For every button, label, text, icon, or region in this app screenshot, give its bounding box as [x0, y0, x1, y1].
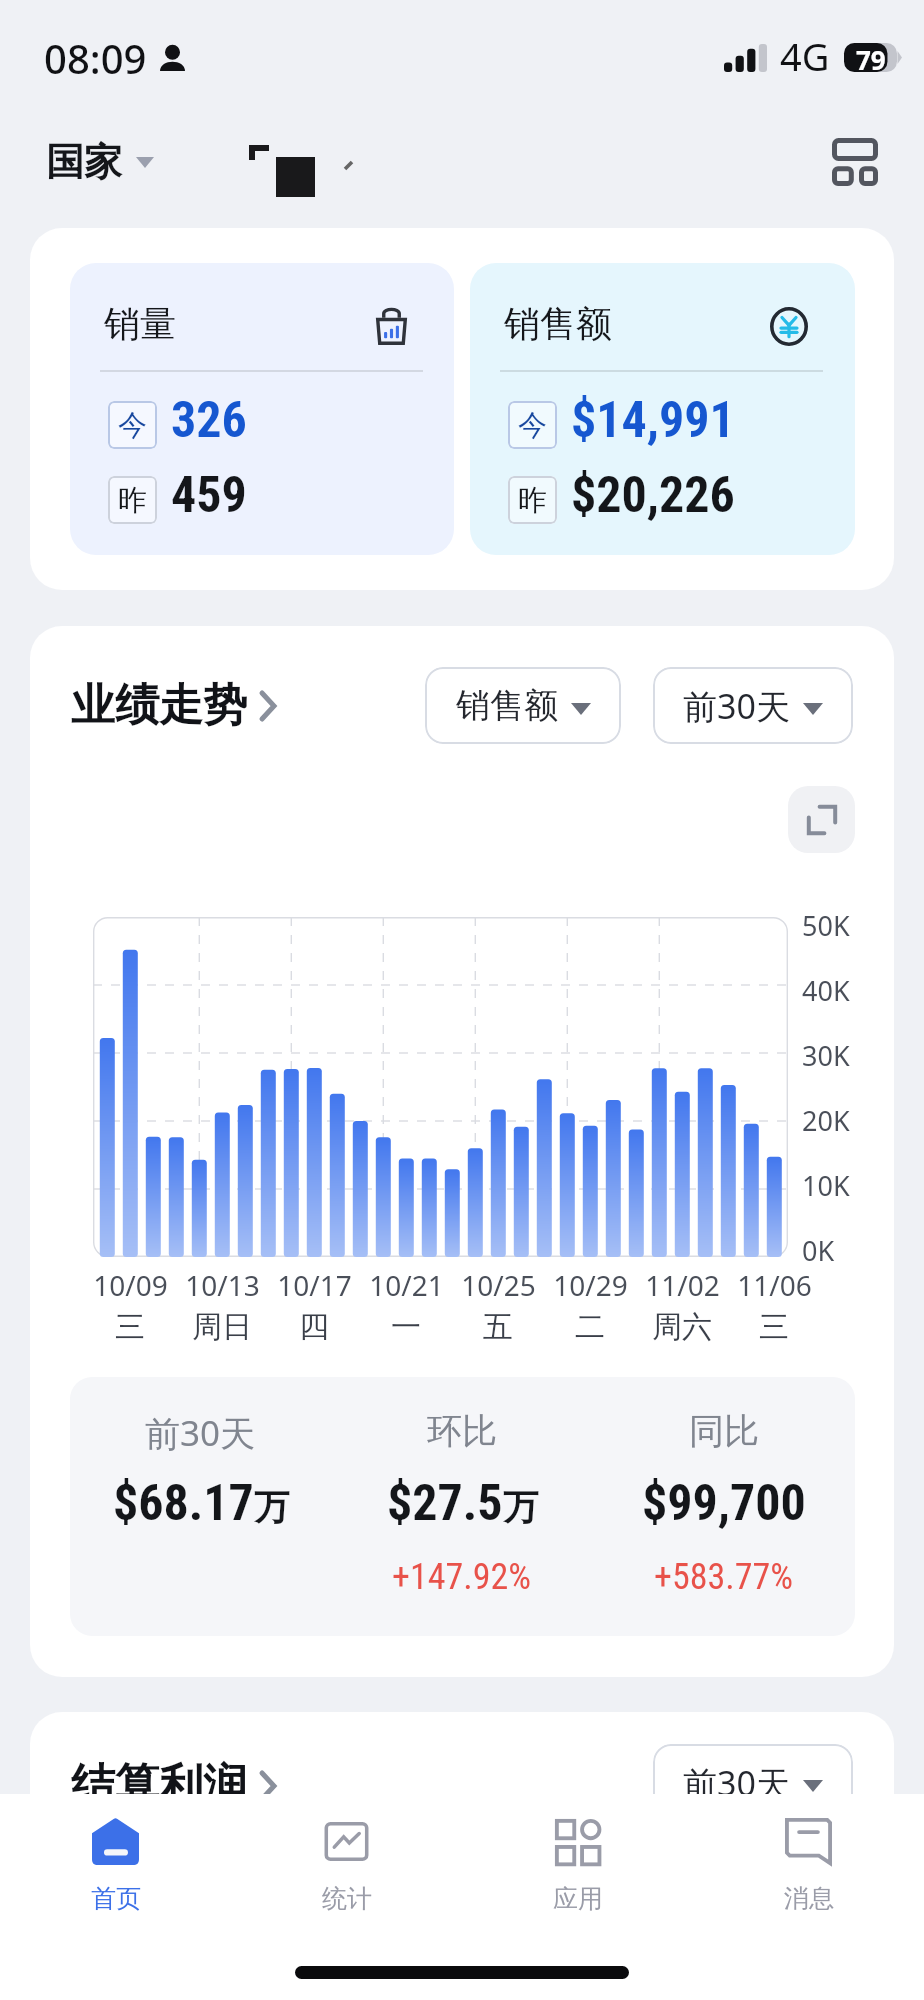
- staticText: 326: [171, 391, 247, 450]
- staticText: $14,991: [571, 391, 735, 450]
- staticText: 二: [575, 1308, 605, 1346]
- staticText: 昨: [518, 482, 547, 519]
- staticText: 08:09: [44, 31, 147, 85]
- staticText: 销量: [104, 301, 176, 346]
- staticText: $20,226: [571, 466, 735, 525]
- staticText: $27.5: [387, 1474, 503, 1533]
- button[interactable]: 消息: [693, 1794, 924, 1942]
- button[interactable]: 业绩走势: [71, 678, 277, 733]
- staticText: 459: [171, 466, 247, 525]
- staticText: 万: [503, 1485, 538, 1529]
- staticText: 周六: [652, 1308, 712, 1346]
- staticText: 今: [118, 407, 147, 444]
- staticText: 10/29: [553, 1266, 628, 1304]
- staticText: 前30天: [145, 1409, 256, 1457]
- staticText: $99,700: [642, 1474, 806, 1533]
- staticText: 前30天: [683, 1760, 790, 1806]
- staticText: 20K: [802, 1102, 850, 1139]
- button[interactable]: 结算利润: [71, 1758, 277, 1813]
- staticText: 11/06: [737, 1266, 812, 1304]
- staticText: 三: [115, 1308, 145, 1346]
- staticText: 10K: [802, 1167, 850, 1204]
- staticText: 环比: [427, 1409, 497, 1453]
- staticText: 30K: [802, 1037, 850, 1074]
- staticText: 一: [391, 1308, 421, 1346]
- button[interactable]: 统计: [231, 1794, 462, 1942]
- staticText: 79: [856, 42, 886, 71]
- staticText: 11/02: [645, 1266, 720, 1304]
- staticText: 10/09: [93, 1266, 168, 1304]
- staticText: 0K: [802, 1232, 835, 1269]
- staticText: 昨: [118, 482, 147, 519]
- staticText: 五: [483, 1308, 513, 1346]
- staticText: 万: [254, 1485, 289, 1529]
- staticText: 消息: [784, 1883, 834, 1914]
- button[interactable]: 首页: [0, 1794, 231, 1942]
- staticText: 业绩走势: [71, 678, 247, 733]
- staticText: 统计: [322, 1883, 372, 1914]
- staticText: 应用: [553, 1883, 603, 1914]
- button[interactable]: 应用: [462, 1794, 693, 1942]
- staticText: 三: [759, 1308, 789, 1346]
- button[interactable]: 国家: [46, 136, 154, 188]
- staticText: 4G: [780, 30, 830, 82]
- button[interactable]: Expand chart: [788, 786, 855, 853]
- staticText: $68.17: [113, 1474, 254, 1533]
- button[interactable]: 销售额: [425, 667, 621, 744]
- button[interactable]: 销售额: [470, 263, 855, 555]
- staticText: 结算利润: [71, 1758, 247, 1813]
- staticText: 销售额: [504, 301, 612, 346]
- button[interactable]: 前30天: [653, 1744, 853, 1821]
- button[interactable]: 前30天: [653, 667, 853, 744]
- staticText: 销售额: [456, 684, 558, 727]
- staticText: 周日: [192, 1308, 252, 1346]
- staticText: 10/17: [277, 1266, 352, 1304]
- staticText: +147.92%: [392, 1556, 532, 1598]
- staticText: 50K: [802, 907, 850, 944]
- staticText: 40K: [802, 972, 850, 1009]
- staticText: 首页: [91, 1883, 141, 1914]
- staticText: 前30天: [683, 683, 790, 729]
- staticText: +583.77%: [654, 1556, 794, 1598]
- staticText: 四: [299, 1308, 329, 1346]
- button[interactable]: 销量: [70, 263, 454, 555]
- button[interactable]: Layout view: [810, 116, 900, 208]
- staticText: 今: [518, 407, 547, 444]
- staticText: 同比: [689, 1409, 759, 1453]
- staticText: 10/25: [461, 1266, 536, 1304]
- staticText: 10/21: [369, 1266, 444, 1304]
- staticText: 国家: [46, 138, 122, 186]
- staticText: 10/13: [185, 1266, 260, 1304]
